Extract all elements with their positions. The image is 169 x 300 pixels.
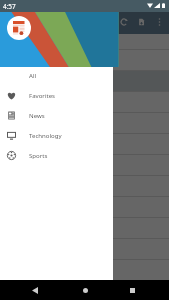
button[interactable]: All: [0, 65, 113, 85]
button[interactable]: [0, 239, 169, 259]
staticText: Favorites: [29, 91, 56, 99]
button[interactable]: Refresh: [115, 13, 132, 30]
button[interactable]: Back: [27, 282, 43, 298]
button[interactable]: [0, 218, 169, 238]
button[interactable]: Profile: [7, 16, 31, 40]
button[interactable]: [0, 113, 169, 133]
button[interactable]: [0, 92, 169, 112]
button[interactable]: Recent apps: [124, 282, 140, 298]
staticText: Sports: [29, 151, 48, 159]
button[interactable]: [0, 71, 169, 91]
button[interactable]: News: [0, 105, 113, 125]
button[interactable]: Save article: [133, 13, 150, 30]
button[interactable]: [0, 34, 169, 49]
button[interactable]: More options: [151, 13, 168, 30]
button[interactable]: [0, 155, 169, 175]
button[interactable]: [0, 50, 169, 70]
button[interactable]: [0, 176, 169, 196]
button[interactable]: Technology: [0, 125, 113, 145]
staticText: News: [29, 111, 45, 119]
button[interactable]: [0, 281, 169, 300]
button[interactable]: [0, 260, 169, 280]
button[interactable]: Home: [77, 282, 93, 298]
button[interactable]: Favorites: [0, 85, 113, 105]
staticText: Technology: [29, 131, 62, 139]
staticText: 4:57: [3, 2, 16, 11]
button[interactable]: Sports: [0, 145, 113, 165]
button[interactable]: [0, 197, 169, 217]
staticText: All: [29, 71, 37, 79]
button[interactable]: [0, 134, 169, 154]
